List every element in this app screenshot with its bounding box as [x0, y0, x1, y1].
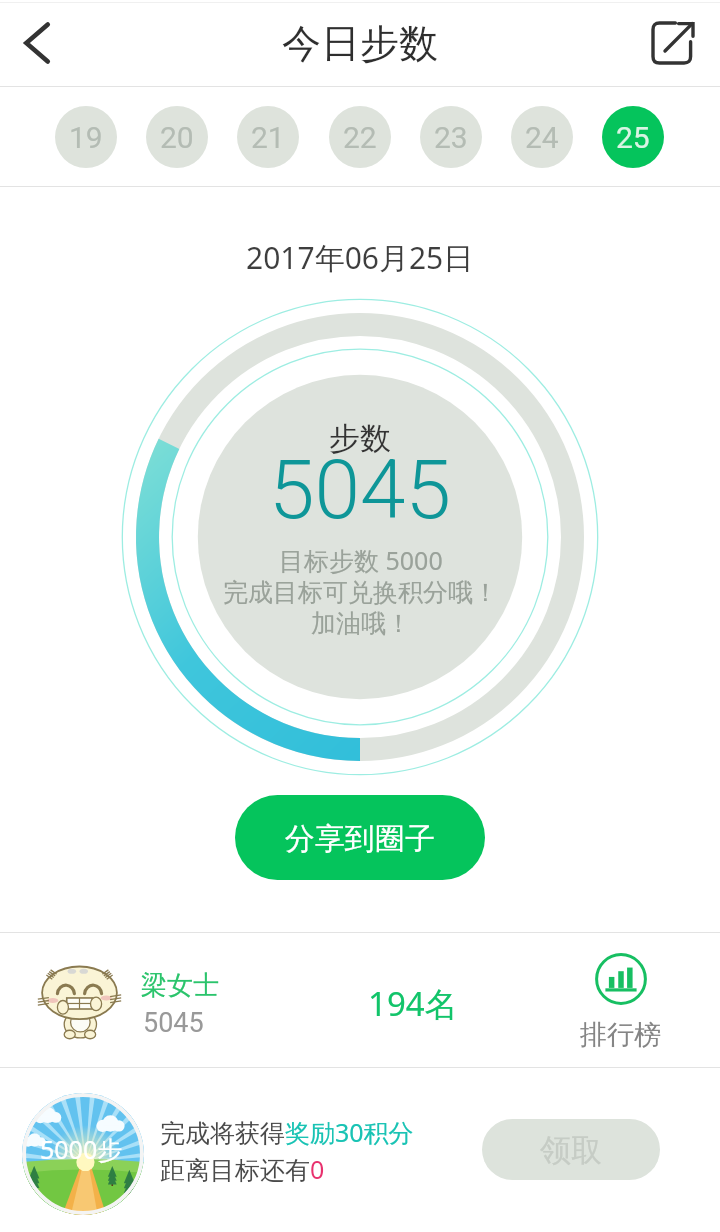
staticText: 完成将获得奖励30积分 — [160, 1115, 414, 1149]
staticText: 21 — [251, 120, 285, 155]
staticText: 加油哦！ — [311, 608, 411, 639]
staticText: 5045 — [143, 1007, 204, 1039]
button[interactable]: 24 — [511, 106, 573, 168]
staticText: 5000步 — [40, 1132, 123, 1166]
staticText: 23 — [434, 120, 468, 155]
staticText: 今日步数 — [282, 19, 438, 68]
button[interactable]: 分享到圈子 — [235, 795, 485, 880]
staticText: 5045 — [269, 442, 451, 538]
button[interactable]: 19 — [55, 106, 117, 168]
staticText: 20 — [160, 120, 194, 155]
staticText: 目标步数 5000 — [279, 543, 443, 577]
staticText: 领取 — [540, 1131, 602, 1170]
staticText: 25 — [616, 120, 650, 155]
staticText: 完成目标可兑换积分哦！ — [223, 577, 498, 608]
button[interactable]: 领取 — [482, 1119, 660, 1180]
staticText: 19 — [69, 120, 103, 155]
button[interactable]: Back — [2, 9, 70, 77]
button[interactable]: 25 — [602, 106, 664, 168]
button[interactable]: 梁女士 — [0, 933, 720, 1067]
button[interactable]: 21 — [237, 106, 299, 168]
staticText: 梁女士 — [141, 969, 219, 1002]
staticText: 分享到圈子 — [285, 820, 435, 858]
staticText: 24 — [525, 120, 559, 155]
staticText: 2017年06月25日 — [246, 237, 474, 278]
button[interactable]: 23 — [420, 106, 482, 168]
button[interactable]: 20 — [146, 106, 208, 168]
staticText: 22 — [343, 120, 377, 155]
button[interactable]: Share — [643, 13, 703, 73]
staticText: 排行榜 — [580, 1018, 661, 1052]
staticText: 步数 — [329, 419, 391, 458]
button[interactable]: 22 — [329, 106, 391, 168]
staticText: 194名 — [368, 981, 458, 1026]
button[interactable]: 排行榜 — [580, 953, 661, 1052]
staticText: 距离目标还有0 — [160, 1152, 325, 1186]
